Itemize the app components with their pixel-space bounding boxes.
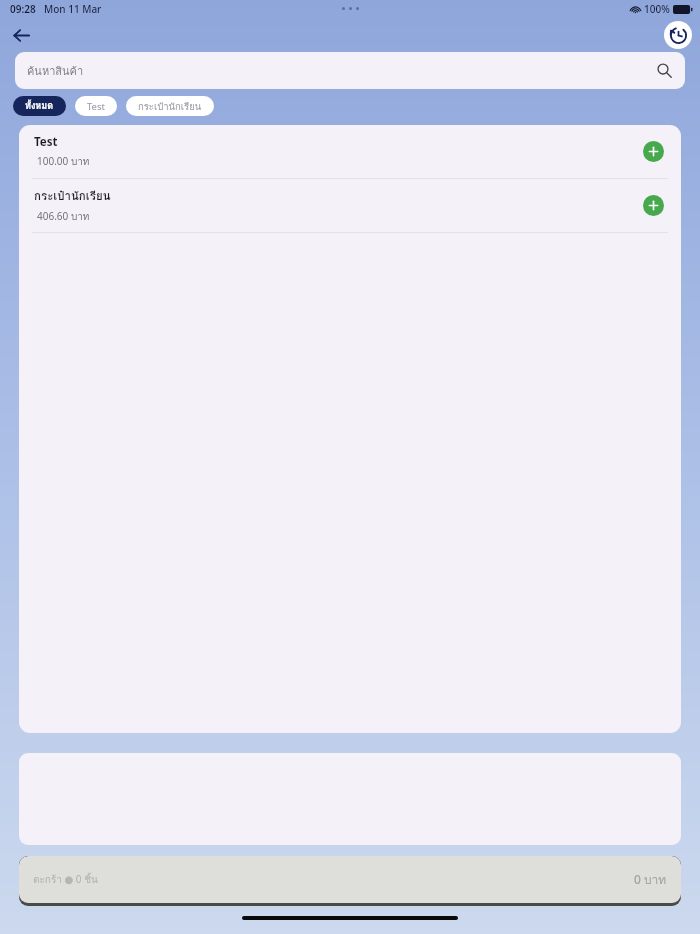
staticText: 100.00 บาท (37, 154, 90, 170)
button[interactable]: Test (19, 125, 681, 178)
button[interactable]: Test (75, 96, 117, 116)
staticText: ค้นหาสินค้า (27, 62, 84, 79)
staticText: 406.60 บาท (37, 209, 90, 225)
button[interactable]: ค้นหาสินค้า (15, 52, 685, 89)
staticText: Mon 11 Mar (44, 2, 102, 16)
button[interactable]: กระเป๋านักเรียน (19, 179, 681, 232)
staticText: กระเป๋านักเรียน (138, 99, 202, 114)
staticText: ทั้งหมด (25, 99, 54, 113)
staticText: กระเป๋านักเรียน (34, 187, 111, 205)
button[interactable]: ทั้งหมด (13, 96, 66, 116)
button[interactable]: ตะกร้า ● 0 ชิ้น (19, 856, 681, 906)
staticText: Test (34, 134, 58, 150)
staticText: ตะกร้า ● 0 ชิ้น (33, 872, 98, 888)
staticText: 100% (644, 2, 670, 16)
staticText: Test (87, 100, 105, 113)
button[interactable]: Back (4, 18, 38, 52)
staticText: 09:28 (10, 2, 36, 16)
button[interactable]: Add Test (643, 141, 664, 162)
button[interactable]: Add กระเป๋านักเรียน (643, 195, 664, 216)
staticText: 0 บาท (634, 870, 667, 889)
button[interactable]: กระเป๋านักเรียน (126, 96, 214, 116)
button[interactable]: History (664, 21, 692, 49)
